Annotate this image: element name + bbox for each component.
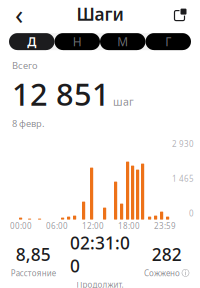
staticText: Всего bbox=[12, 59, 38, 71]
staticText: Д bbox=[27, 34, 36, 49]
staticText: 06:00 bbox=[46, 221, 68, 231]
staticText: Шаги bbox=[76, 3, 123, 26]
button[interactable]: Д bbox=[9, 33, 54, 50]
staticText: 02:31:00 bbox=[70, 231, 130, 277]
button[interactable]: Н bbox=[54, 33, 100, 50]
staticText: 18:00 bbox=[118, 221, 140, 231]
staticText: Сожжено bbox=[144, 268, 180, 278]
button[interactable]: Назад bbox=[4, 1, 34, 27]
staticText: ⓘ bbox=[181, 268, 189, 278]
staticText: Продолжит. bbox=[76, 279, 123, 288]
staticText: 8,85 bbox=[16, 243, 51, 266]
staticText: 0 bbox=[189, 208, 194, 219]
staticText: ‹ bbox=[15, 0, 23, 32]
staticText: шаг bbox=[113, 94, 134, 109]
staticText: 23:59 bbox=[154, 221, 176, 231]
staticText: 282 bbox=[152, 243, 182, 266]
staticText: М bbox=[117, 34, 128, 49]
staticText: 00:00 bbox=[10, 221, 32, 231]
button[interactable]: Поделиться bbox=[166, 1, 196, 27]
staticText: 12 851 bbox=[12, 73, 110, 114]
button[interactable]: М bbox=[100, 33, 145, 50]
staticText: Г bbox=[165, 34, 171, 49]
staticText: 1 465 bbox=[172, 173, 194, 184]
staticText: Н bbox=[73, 34, 82, 49]
staticText: 2 930 bbox=[172, 139, 194, 149]
staticText: 12:00 bbox=[82, 221, 104, 231]
staticText: 8 февр. bbox=[12, 117, 45, 130]
button[interactable]: Г bbox=[145, 33, 191, 50]
staticText: Расстояние bbox=[11, 268, 56, 278]
